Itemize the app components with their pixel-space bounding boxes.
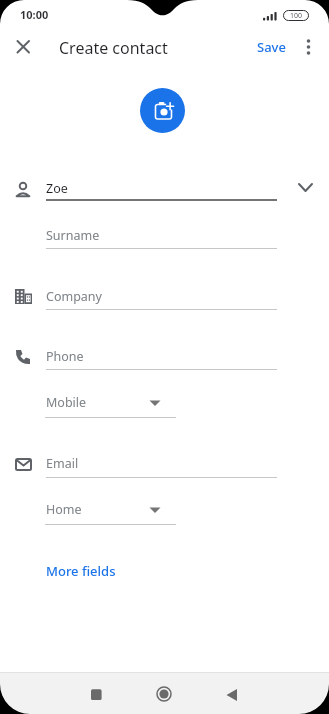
button[interactable]: Save [252,34,281,60]
staticText: Phone [46,348,84,365]
button[interactable]: Phone [46,345,277,370]
button[interactable]: Home [46,498,176,523]
button[interactable]: Email [46,452,277,477]
button[interactable] [218,680,246,708]
button[interactable]: Mobile [46,391,176,416]
staticText: 10:00 [20,7,49,22]
staticText: Create contact [59,37,168,59]
staticText: More fields [46,562,116,580]
staticText: Surname [46,227,100,244]
staticText: Save [257,38,286,56]
button[interactable]: Company [46,285,277,310]
staticText: 100 [290,11,303,21]
staticText: Company [46,288,102,305]
button[interactable] [150,680,178,708]
button[interactable]: More fields [40,556,130,584]
staticText: Email [46,455,79,472]
button[interactable] [140,88,185,133]
button[interactable] [292,176,316,196]
button[interactable] [82,680,110,708]
button[interactable] [298,34,318,60]
staticText: Mobile [46,394,87,411]
button[interactable] [11,35,35,59]
staticText: Home [46,501,82,518]
staticText: Zoe [46,180,68,197]
button[interactable]: Surname [46,224,277,249]
button[interactable]: Zoe [46,174,277,199]
